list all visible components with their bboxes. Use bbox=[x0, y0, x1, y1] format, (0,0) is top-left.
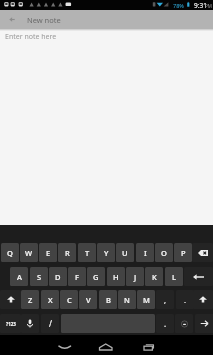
button[interactable]: Back bbox=[0, 10, 24, 29]
staticText: . bbox=[184, 295, 187, 305]
staticText: ?123 bbox=[6, 321, 16, 327]
button[interactable]: T bbox=[78, 243, 96, 262]
staticText: C bbox=[67, 295, 72, 305]
button[interactable]: X bbox=[41, 290, 59, 309]
button[interactable]: E bbox=[39, 243, 57, 262]
staticText: 78% bbox=[173, 2, 184, 9]
staticText: L bbox=[172, 272, 177, 282]
other: Emoji bbox=[181, 321, 188, 327]
button[interactable]: Shift bbox=[0, 290, 21, 309]
staticText: F bbox=[75, 272, 79, 282]
button[interactable]: N bbox=[118, 290, 136, 309]
button[interactable]: M bbox=[137, 290, 155, 309]
staticText: A bbox=[17, 272, 22, 282]
staticText: U bbox=[122, 248, 128, 258]
staticText: X bbox=[48, 295, 53, 305]
staticText: W bbox=[25, 248, 33, 258]
button[interactable]: Emoji bbox=[175, 314, 193, 333]
button[interactable]: D bbox=[49, 267, 67, 286]
staticText: K bbox=[152, 272, 157, 282]
button[interactable]: B bbox=[99, 290, 117, 309]
button[interactable]: U bbox=[116, 243, 134, 262]
button[interactable]: Slash bbox=[41, 314, 59, 333]
button[interactable]: Symbols bbox=[0, 314, 21, 333]
staticText: Q bbox=[7, 248, 13, 258]
button[interactable]: S bbox=[30, 267, 48, 286]
button[interactable]: Y bbox=[97, 243, 115, 262]
button[interactable]: K bbox=[145, 267, 163, 286]
button[interactable]: Voice input bbox=[21, 314, 39, 333]
button[interactable]: Z bbox=[21, 290, 39, 309]
button[interactable]: J bbox=[126, 267, 144, 286]
staticText: B bbox=[106, 295, 111, 305]
staticText: G bbox=[93, 272, 99, 282]
staticText: E bbox=[46, 248, 51, 258]
button[interactable]: Period bbox=[176, 290, 194, 309]
staticText: 9:31 bbox=[194, 1, 207, 10]
staticText: Z bbox=[28, 295, 33, 305]
button[interactable]: W bbox=[20, 243, 38, 262]
staticText: , bbox=[164, 295, 167, 305]
staticText: M bbox=[143, 295, 150, 305]
button[interactable]: Recent apps bbox=[127, 335, 169, 355]
staticText: H bbox=[113, 272, 119, 282]
button[interactable]: Hide keyboard bbox=[45, 335, 87, 355]
button[interactable]: I bbox=[136, 243, 154, 262]
staticText: V bbox=[86, 295, 91, 305]
staticText: R bbox=[65, 248, 70, 258]
button[interactable]: F bbox=[68, 267, 86, 286]
staticText: Y bbox=[104, 248, 109, 258]
button[interactable]: C bbox=[60, 290, 78, 309]
staticText: N bbox=[124, 295, 130, 305]
button[interactable]: Go bbox=[195, 314, 213, 333]
button[interactable]: Home bbox=[86, 335, 128, 355]
staticText: T bbox=[85, 248, 90, 258]
button[interactable]: Shift bbox=[193, 290, 213, 309]
button[interactable]: Backspace bbox=[192, 243, 213, 262]
button[interactable]: Comma bbox=[156, 290, 174, 309]
button[interactable]: Q bbox=[1, 243, 19, 262]
staticText: / bbox=[49, 318, 52, 329]
button[interactable]: R bbox=[58, 243, 76, 262]
button[interactable]: V bbox=[79, 290, 97, 309]
other: Voice input bbox=[27, 319, 33, 328]
button[interactable]: Period bbox=[156, 314, 174, 333]
staticText: New note bbox=[27, 15, 61, 25]
staticText: P bbox=[181, 248, 186, 258]
button[interactable]: A bbox=[10, 267, 28, 286]
staticText: . bbox=[164, 318, 167, 329]
button[interactable]: O bbox=[155, 243, 173, 262]
staticText: D bbox=[55, 272, 61, 282]
staticText: S bbox=[37, 272, 42, 282]
button[interactable]: H bbox=[107, 267, 125, 286]
staticText: I bbox=[144, 248, 147, 258]
staticText: O bbox=[161, 248, 167, 258]
button[interactable]: Enter bbox=[184, 267, 213, 286]
button[interactable]: P bbox=[174, 243, 192, 262]
button[interactable]: L bbox=[165, 267, 183, 286]
button[interactable]: G bbox=[87, 267, 105, 286]
staticText: J bbox=[134, 272, 137, 282]
staticText: PM bbox=[205, 3, 212, 9]
staticText: Enter note here bbox=[5, 32, 57, 42]
